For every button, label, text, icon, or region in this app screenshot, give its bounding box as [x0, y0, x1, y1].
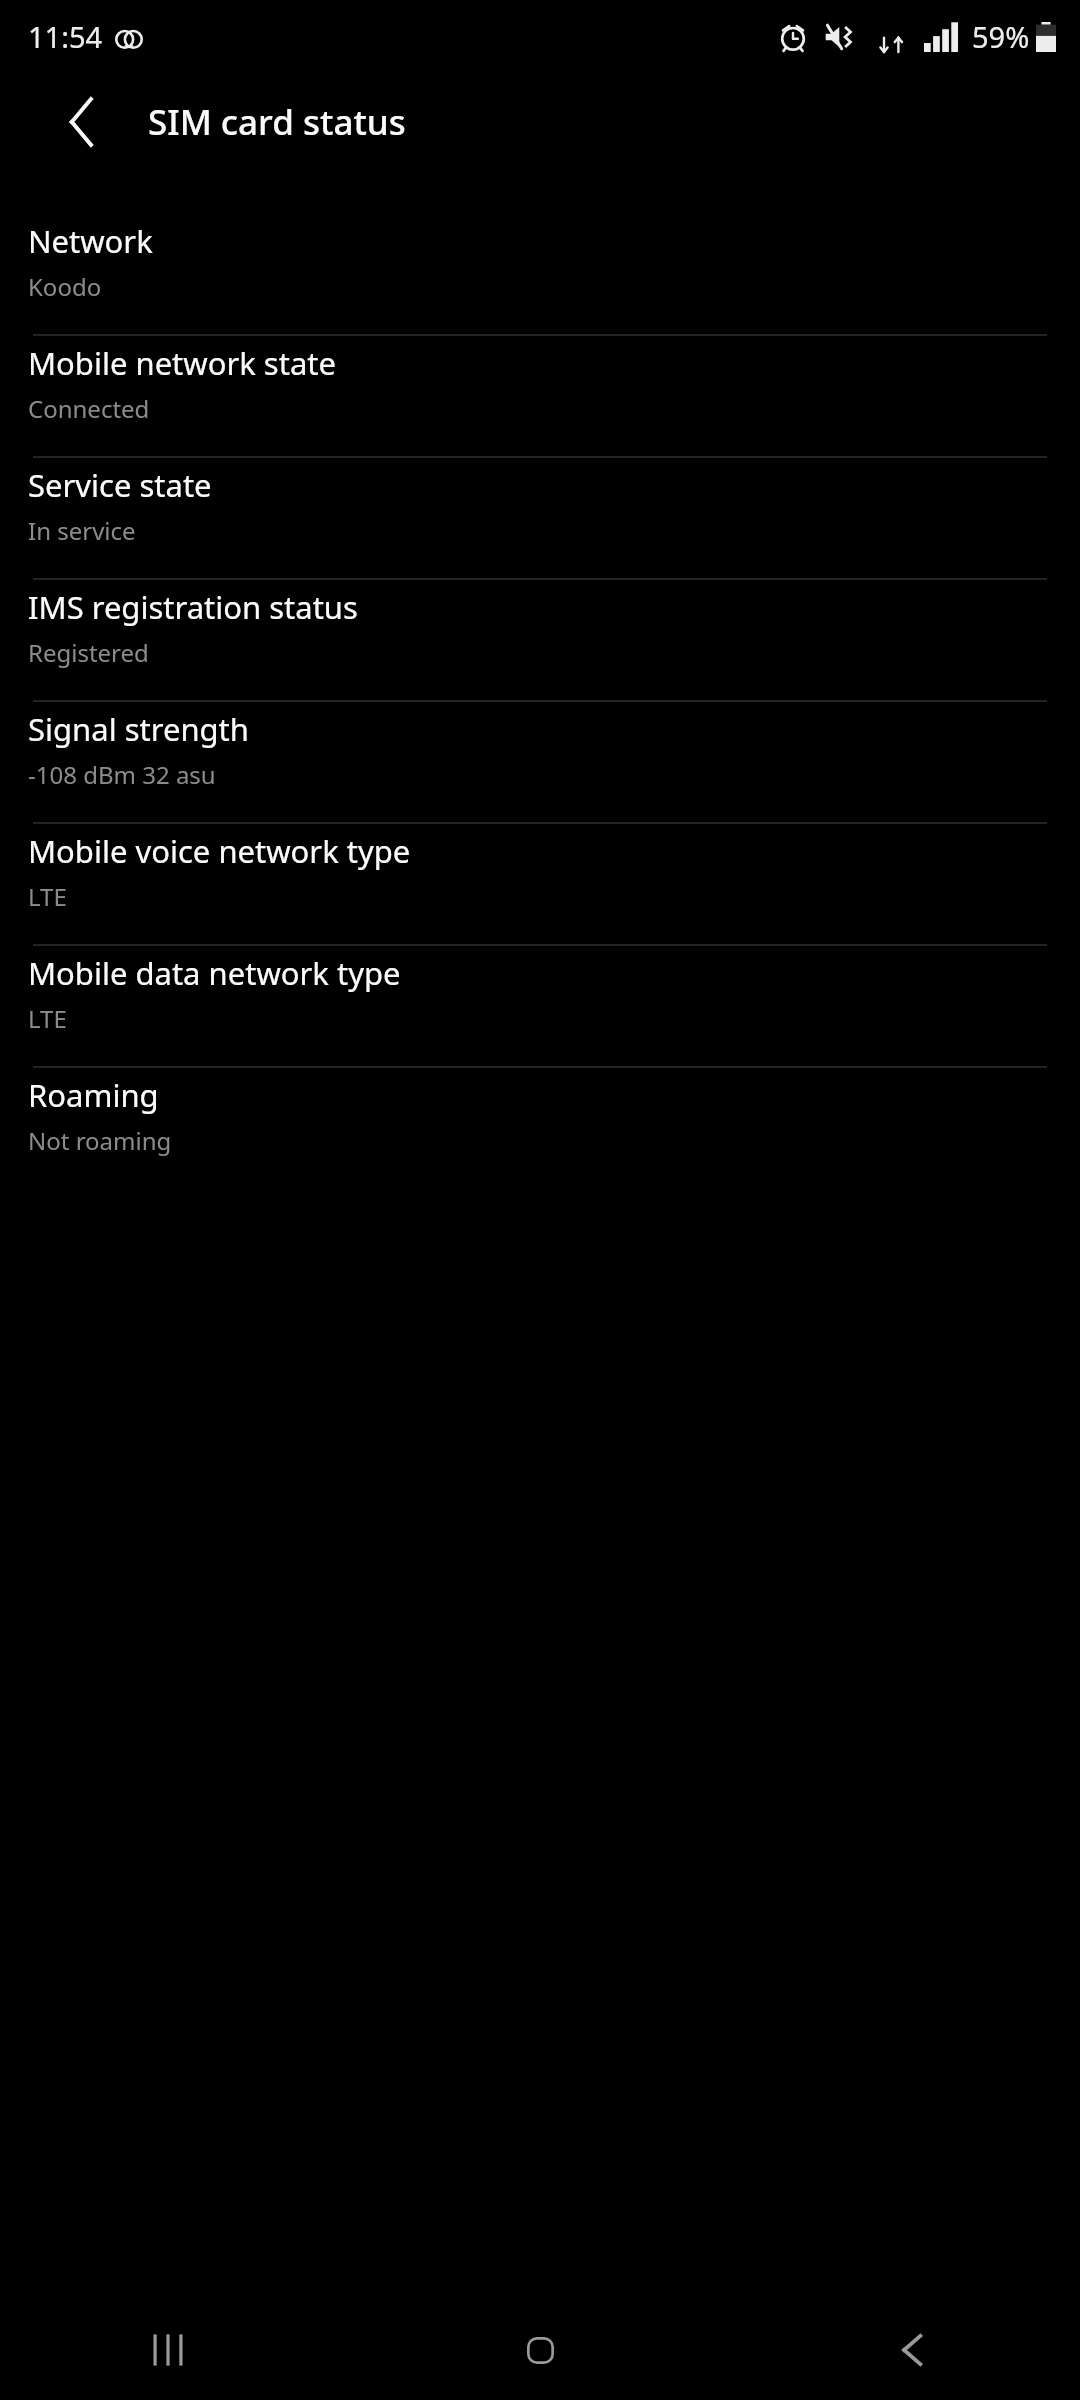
staticText: Mobile network state — [28, 342, 336, 384]
staticText: Mobile voice network type — [28, 830, 411, 872]
staticText: LTE — [28, 880, 67, 913]
staticText: In service — [28, 514, 136, 547]
staticText: -108 dBm 32 asu — [28, 758, 216, 791]
staticText: Network — [28, 220, 153, 262]
button[interactable]: Navigate up — [36, 76, 128, 168]
staticText: IMS registration status — [28, 586, 358, 628]
staticText: 11:54 — [28, 17, 103, 56]
staticText: Registered — [28, 636, 149, 669]
button[interactable]: Back — [864, 2302, 960, 2398]
button[interactable]: Service state — [0, 458, 1080, 578]
button[interactable]: Recent apps — [120, 2302, 216, 2398]
staticText: Mobile data network type — [28, 952, 401, 994]
staticText: LTE — [28, 1002, 67, 1035]
staticText: SIM card status — [148, 98, 406, 146]
staticText: Connected — [28, 392, 150, 425]
staticText: 59% — [972, 17, 1030, 56]
button[interactable]: Mobile voice network type — [0, 824, 1080, 944]
staticText: Signal strength — [28, 708, 249, 750]
staticText: Not roaming — [28, 1124, 172, 1157]
staticText: Service state — [28, 464, 212, 506]
button[interactable]: Roaming — [0, 1068, 1080, 1188]
button[interactable]: Mobile network state — [0, 336, 1080, 456]
staticText: Roaming — [28, 1074, 159, 1116]
button[interactable]: Mobile data network type — [0, 946, 1080, 1066]
button[interactable]: Home — [492, 2302, 588, 2398]
button[interactable]: Signal strength — [0, 702, 1080, 822]
button[interactable]: IMS registration status — [0, 580, 1080, 700]
button[interactable]: Network — [0, 214, 1080, 334]
staticText: Koodo — [28, 270, 102, 303]
